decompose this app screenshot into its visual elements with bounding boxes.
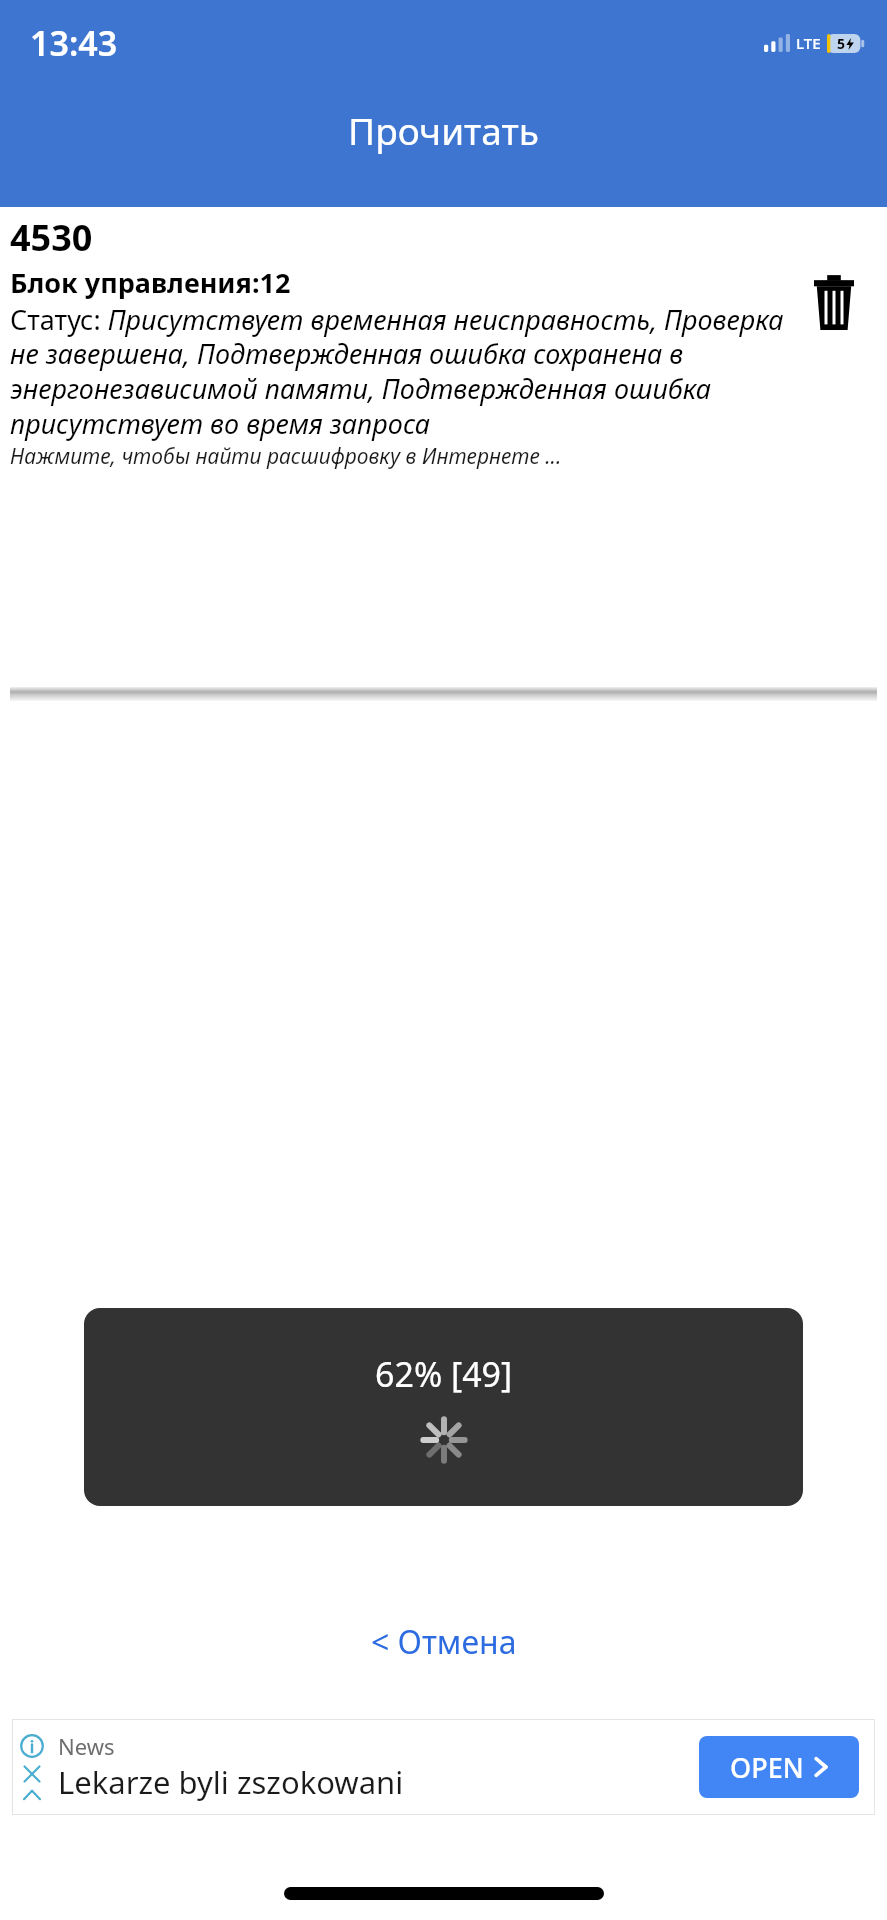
- button[interactable]: < Отмена: [347, 1610, 541, 1674]
- staticText: OPEN: [730, 1749, 804, 1786]
- staticText: News: [58, 1731, 115, 1761]
- staticText: Нажмите, чтобы найти расшифровку в Интер…: [10, 442, 562, 471]
- button[interactable]: Информация об объявлении: [19, 1733, 45, 1759]
- staticText: 4530: [10, 213, 93, 262]
- staticText: Блок управления:12: [10, 264, 291, 301]
- button[interactable]: Информация об объявлении: [12, 1719, 875, 1815]
- staticText: Статус: Присутствует временная неисправн…: [10, 301, 797, 442]
- button[interactable]: 4530: [0, 213, 803, 471]
- staticText: 5: [837, 34, 846, 53]
- staticText: LTE: [796, 33, 821, 53]
- staticText: < Отмена: [371, 1620, 517, 1664]
- button[interactable]: Закрыть объявление: [19, 1761, 45, 1787]
- staticText: 13:43: [30, 20, 118, 66]
- staticText: Прочитать: [348, 105, 539, 155]
- staticText: Lekarze byli zszokowani: [58, 1761, 404, 1803]
- staticText: 62% [49]: [375, 1351, 513, 1397]
- button[interactable]: Удалить: [803, 271, 865, 333]
- button[interactable]: OPEN: [699, 1736, 859, 1798]
